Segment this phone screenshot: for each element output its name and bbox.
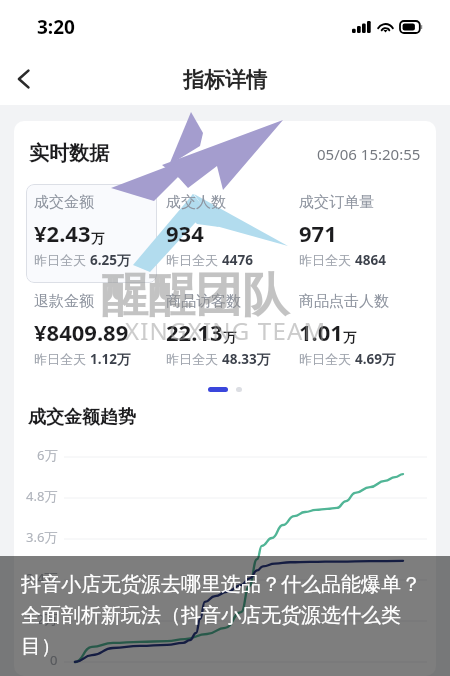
- staticText: 昨日全天: [34, 251, 90, 269]
- staticText: 昨日全天: [299, 251, 355, 269]
- staticText: 昨日全天: [34, 350, 90, 368]
- staticText: 1.12万: [90, 350, 131, 368]
- staticText: 昨日全天: [166, 251, 222, 269]
- staticText: 实时数据: [29, 141, 109, 166]
- staticText: 971: [299, 218, 337, 248]
- button[interactable]: 商品访客数: [158, 283, 291, 377]
- staticText: ¥8409.89: [34, 317, 129, 347]
- staticText: 醒醒团队: [101, 266, 289, 325]
- staticText: 3.6万: [26, 528, 58, 546]
- staticText: 万: [91, 230, 104, 246]
- staticText: 成交人数: [166, 193, 226, 212]
- staticText: 05/06 15:20:55: [317, 144, 421, 164]
- staticText: 48.33万: [222, 350, 271, 368]
- staticText: 3:20: [37, 14, 75, 40]
- staticText: 4476: [222, 251, 253, 269]
- staticText: 昨日全天: [299, 350, 355, 368]
- staticText: 退款金额: [34, 292, 94, 311]
- staticText: 4864: [355, 251, 386, 269]
- staticText: 1.01: [299, 317, 343, 347]
- button[interactable]: 成交人数: [158, 184, 291, 278]
- staticText: 成交订单量: [299, 193, 374, 212]
- staticText: 指标详情: [183, 67, 267, 93]
- button[interactable]: 商品点击人数: [291, 283, 424, 377]
- staticText: 抖音小店无货源去哪里选品？什么品能爆单？全面剖析新玩法（抖音小店无货源选什么类目…: [21, 572, 432, 659]
- staticText: 成交金额趋势: [28, 406, 136, 429]
- staticText: 成交金额: [34, 193, 94, 212]
- staticText: 6.25万: [90, 251, 131, 269]
- staticText: 商品点击人数: [299, 292, 389, 311]
- staticText: XINGXING TEAM: [125, 314, 327, 347]
- staticText: 22.13: [166, 317, 223, 347]
- button[interactable]: 成交金额: [26, 184, 158, 278]
- button[interactable]: 成交订单量: [291, 184, 424, 278]
- staticText: 0: [50, 651, 58, 669]
- staticText: 2.4万: [26, 569, 58, 587]
- staticText: 万: [223, 329, 236, 345]
- staticText: ¥2.43: [34, 218, 91, 248]
- staticText: 万: [343, 329, 356, 345]
- staticText: 6万: [37, 446, 58, 464]
- staticText: 4.8万: [26, 487, 58, 505]
- button[interactable]: Back: [2, 57, 46, 101]
- staticText: 934: [166, 218, 204, 248]
- button[interactable]: 退款金额: [26, 283, 158, 377]
- staticText: 昨日全天: [166, 350, 222, 368]
- staticText: 1.2万: [26, 610, 58, 628]
- staticText: 商品访客数: [166, 292, 241, 311]
- staticText: 4.69万: [355, 350, 396, 368]
